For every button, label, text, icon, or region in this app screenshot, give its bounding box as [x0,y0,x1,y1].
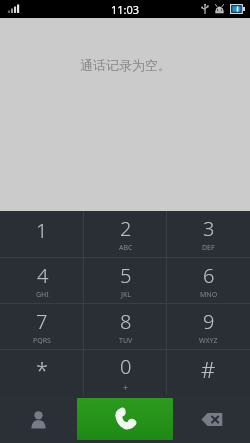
staticText: 7 [36,308,48,335]
button[interactable]: 3 [167,211,250,257]
button[interactable]: # [167,350,250,395]
staticText: WXYZ [199,336,218,346]
staticText: 11:03 [111,2,140,17]
staticText: # [201,354,216,384]
button[interactable]: 9 [167,304,250,349]
button[interactable]: Call [77,398,173,440]
button[interactable]: 5 [84,258,167,303]
staticText: 通话记录为空。 [80,57,171,73]
staticText: DEF [202,243,215,253]
staticText: * [36,354,49,384]
staticText: JKL [121,290,131,300]
button[interactable]: Contacts [0,395,77,443]
staticText: 9 [203,308,215,335]
staticText: + [123,381,129,393]
staticText: 1 [36,217,48,244]
staticText: 4 [37,262,49,289]
button[interactable]: 8 [84,304,167,349]
staticText: 6 [203,262,215,289]
button[interactable]: Backspace [173,395,250,443]
staticText: 0 [120,353,132,380]
staticText: TUV [119,336,133,346]
staticText: PQRS [33,336,51,346]
staticText: 3 [203,215,215,242]
button[interactable]: 6 [167,258,250,303]
staticText: 5 [120,262,132,289]
staticText: GHI [36,290,49,300]
staticText: 2 [120,215,132,242]
button[interactable]: 2 [84,211,167,257]
button[interactable]: 0 [84,350,167,395]
button[interactable]: 7 [0,304,84,349]
button[interactable]: 4 [0,258,84,303]
button[interactable]: 1 [0,211,84,257]
staticText: MNO [200,290,218,300]
staticText: ABC [119,243,133,253]
staticText: 8 [120,308,132,335]
button[interactable]: * [0,350,84,395]
